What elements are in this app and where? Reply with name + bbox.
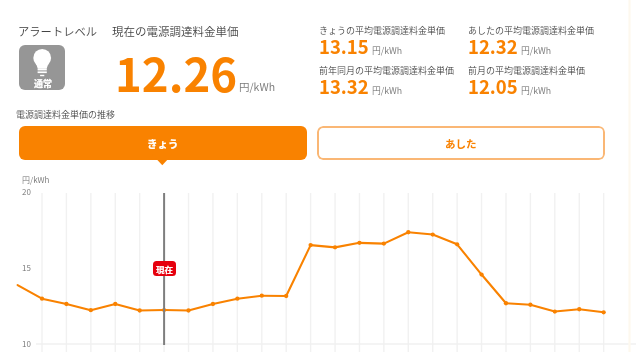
staticText: 前月の平均電源調達料金単価 [468,64,586,77]
staticText: 円/kWh [22,174,50,186]
staticText: アラートレベル [18,23,98,39]
button[interactable]: きょう [19,126,307,160]
staticText: 13.15 [319,33,369,60]
staticText: 円/kWh [521,84,552,97]
staticText: 円/kWh [521,44,552,57]
staticText: 前年同月の平均電源調達料金単価 [319,64,455,77]
staticText: 通常 [34,77,53,90]
staticText: 13.32 [319,73,369,100]
staticText: あしたの平均電源調達料金単価 [468,24,595,37]
staticText: きょうの平均電源調達料金単価 [319,24,446,37]
button[interactable]: あした [317,126,605,160]
staticText: 12.05 [468,73,518,100]
staticText: 15 [22,262,31,274]
staticText: 現在の電源調達料金単価 [112,23,239,40]
staticText: 円/kWh [372,84,403,97]
staticText: 12.26 [115,39,238,105]
button[interactable]: アラートレベル 通常 [19,45,65,90]
staticText: 電源調達料金単価の推移 [16,108,116,121]
staticText: 円/kWh [372,44,403,57]
staticText: 12.32 [468,33,518,60]
staticText: きょう [147,136,179,151]
staticText: 円/kWh [239,79,276,94]
staticText: 20 [22,186,31,198]
staticText: 現在 [156,263,174,275]
staticText: あした [445,136,477,151]
staticText: 10 [22,338,31,350]
